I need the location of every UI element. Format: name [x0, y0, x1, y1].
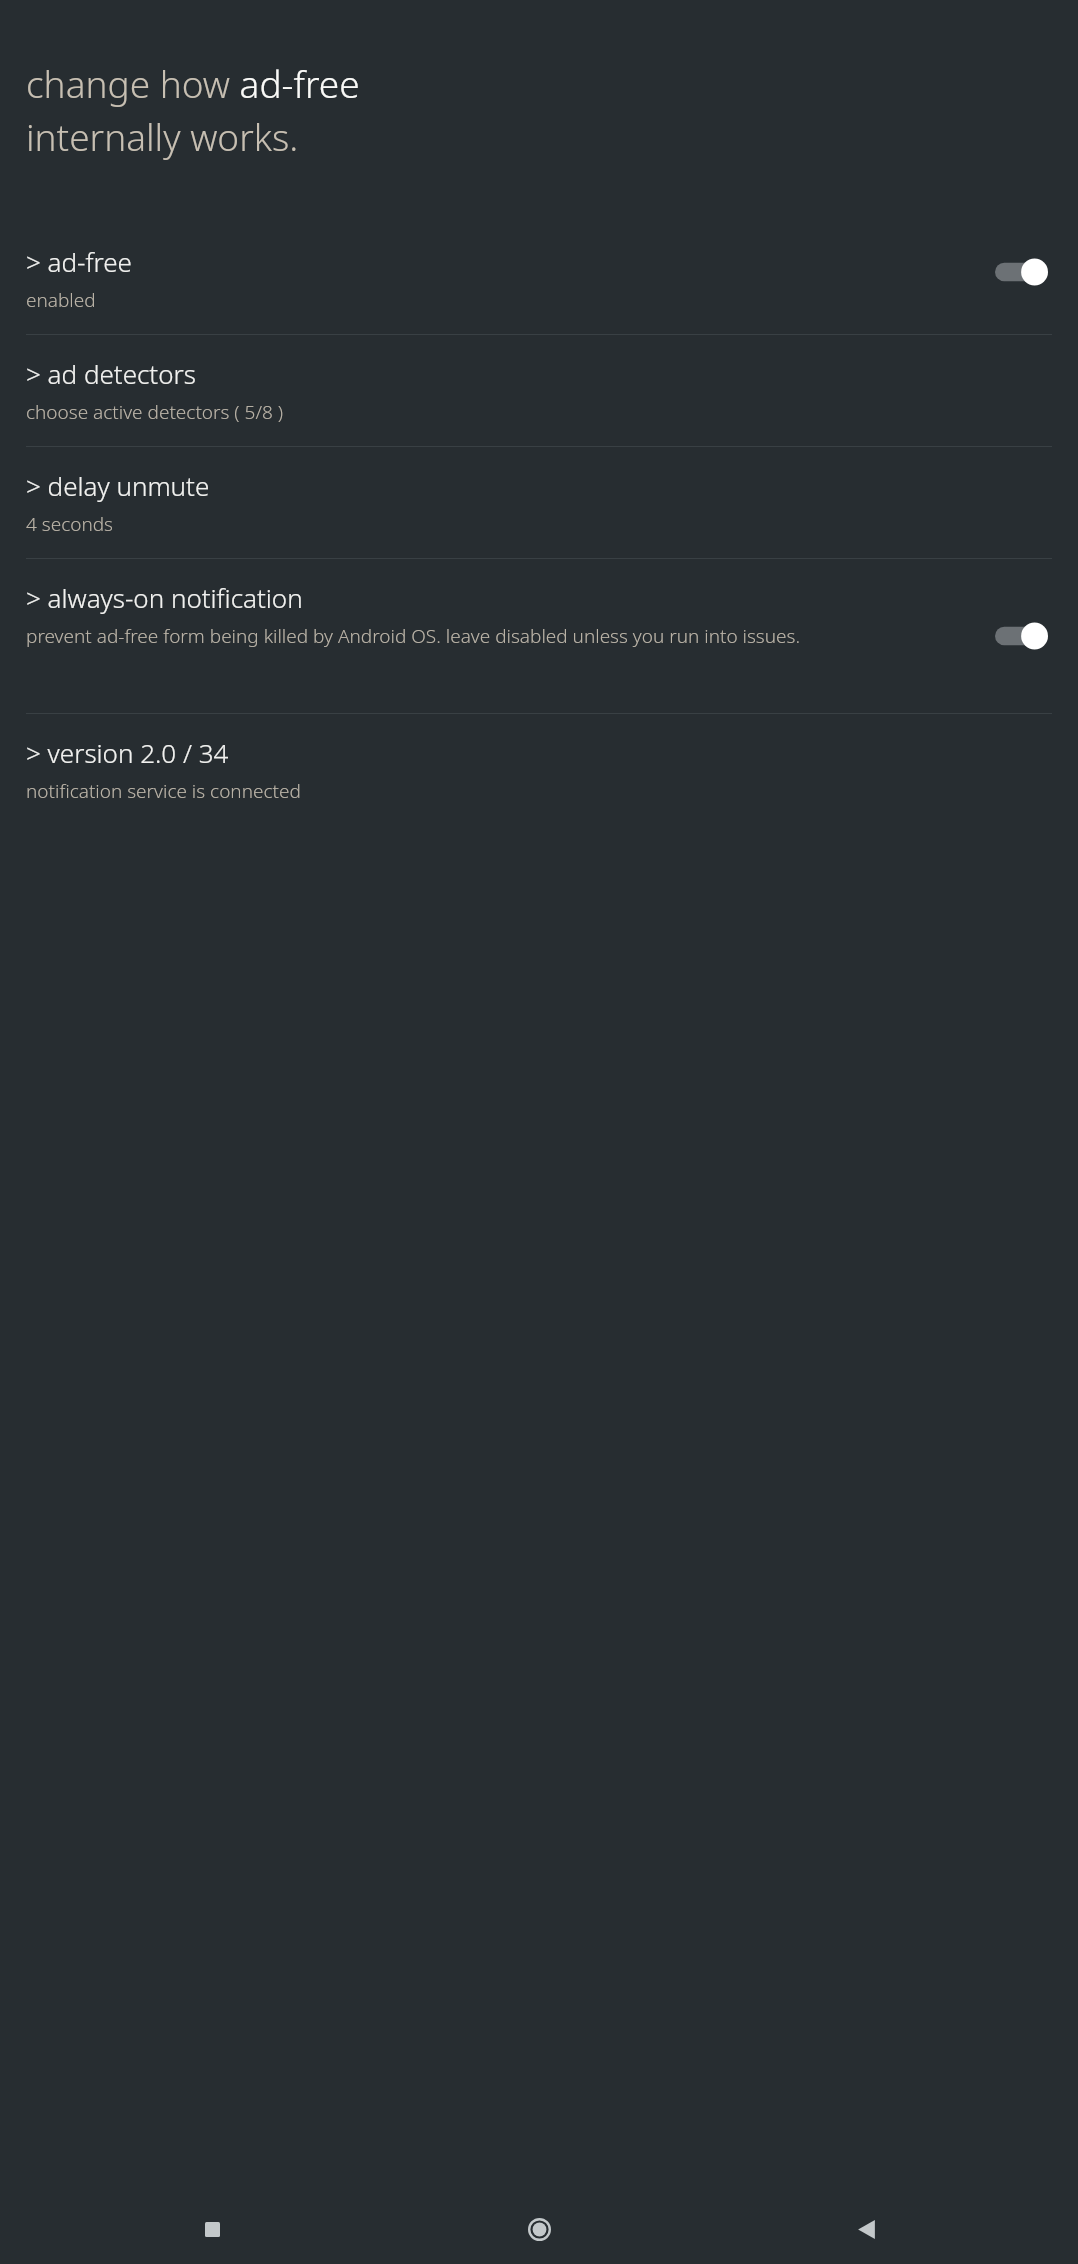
button[interactable]: Home [513, 2203, 565, 2255]
staticText: prevent ad-free form being killed by And… [26, 623, 801, 649]
staticText: 4 seconds [26, 511, 114, 537]
staticText: enabled [26, 287, 96, 313]
button[interactable]: Toggle always-on notification [995, 620, 1048, 652]
staticText: > always-on notification [26, 580, 303, 615]
button[interactable]: Recents [186, 2203, 238, 2255]
button[interactable]: > delay unmute [26, 447, 1052, 558]
button[interactable]: Toggle ad-free [995, 256, 1048, 288]
staticText: > ad detectors [26, 356, 196, 391]
staticText: notification service is connected [26, 778, 301, 804]
button[interactable]: Back [840, 2203, 892, 2255]
button[interactable]: > version 2.0 / 34 [26, 714, 1052, 825]
button[interactable]: > ad-free [26, 223, 1052, 334]
staticText: > delay unmute [26, 468, 210, 503]
staticText: choose active detectors ( 5/8 ) [26, 399, 284, 425]
staticText: change how ad-free internally works. [26, 58, 360, 161]
staticText: > version 2.0 / 34 [26, 735, 229, 770]
button[interactable]: > ad detectors [26, 335, 1052, 446]
button[interactable]: > always-on notification [26, 559, 1052, 713]
staticText: > ad-free [26, 244, 132, 279]
